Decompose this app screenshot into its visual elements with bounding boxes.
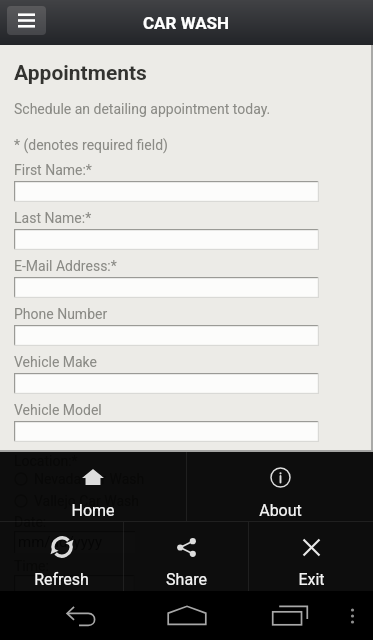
staticText: Appointments	[14, 61, 147, 86]
button[interactable]: Exit	[249, 522, 373, 592]
button[interactable]: More options	[346, 601, 359, 631]
staticText: Schedule an detailing appointment today.	[14, 101, 271, 117]
staticText: CAR WASH	[143, 13, 230, 33]
button[interactable]: Back	[66, 605, 97, 629]
staticText: First Name:*	[14, 162, 92, 178]
staticText: Share	[166, 570, 207, 589]
button[interactable]	[14, 325, 319, 346]
staticText: Vehicle Model	[14, 402, 102, 418]
staticText: Date:	[14, 514, 47, 530]
staticText: * (denotes required field)	[14, 137, 168, 153]
button[interactable]: Home	[0, 452, 186, 521]
button[interactable]	[14, 229, 319, 250]
button[interactable]: mm/dd/yyyy	[14, 531, 135, 553]
staticText: Phone Number	[14, 306, 108, 322]
button[interactable]: Refresh	[0, 522, 123, 592]
button[interactable]	[14, 575, 135, 596]
button[interactable]	[14, 181, 319, 202]
staticText: About	[259, 501, 302, 520]
button[interactable]	[14, 421, 319, 442]
staticText: Vehicle Make	[14, 354, 98, 370]
staticText: mm/dd/yyyy	[18, 533, 102, 551]
staticText: E-Mail Address:*	[14, 258, 117, 274]
staticText: Last Name:*	[14, 210, 92, 226]
staticText: Home	[71, 501, 115, 520]
staticText: Refresh	[34, 570, 89, 589]
button[interactable]: Share	[124, 522, 248, 592]
button[interactable]: Recent apps	[272, 605, 308, 627]
button[interactable]	[14, 373, 319, 394]
staticText: Nevada Car Wash	[34, 471, 145, 487]
staticText: Exit	[298, 570, 325, 589]
staticText: Time:	[14, 558, 49, 574]
button[interactable]	[14, 277, 319, 298]
button[interactable]: Vallejo Car Wash	[14, 492, 139, 510]
staticText: Vallejo Car Wash	[34, 493, 139, 509]
button[interactable]: Home	[167, 605, 207, 627]
button[interactable]: Menu	[7, 6, 46, 35]
button[interactable]: About	[187, 452, 373, 521]
button[interactable]: Nevada Car Wash	[14, 470, 145, 488]
